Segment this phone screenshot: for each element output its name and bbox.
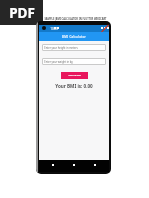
staticText: BMI Calculator (62, 35, 86, 39)
button[interactable]: Enter your weight in kg (42, 58, 106, 65)
button[interactable]: Back (46, 160, 60, 169)
staticText: CALCULATE (68, 74, 81, 77)
button[interactable]: Home (67, 160, 81, 169)
staticText: 10:35 (50, 27, 58, 31)
button[interactable]: Recents (88, 160, 102, 169)
button[interactable]: Enter your height in meters (42, 44, 106, 51)
staticText: SAMPLE|BMI CALCULATOR IN FLUTTER WIKICAR… (44, 17, 107, 20)
button[interactable]: CALCULATE (61, 72, 88, 79)
staticText: Enter your weight in kg (44, 60, 73, 64)
staticText: Enter your height in meters (44, 46, 78, 50)
staticText: PDF (9, 4, 35, 22)
staticText: Your BMI is: 0.00 (55, 83, 93, 89)
